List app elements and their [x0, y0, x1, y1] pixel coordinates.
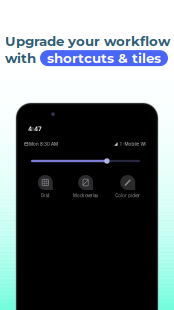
button[interactable]: shortcuts & tiles [40, 50, 168, 66]
staticText: shortcuts & tiles [47, 50, 161, 66]
staticText: with [5, 50, 36, 66]
staticText: T-Mobile Wi [118, 141, 146, 147]
button[interactable]: Color picker [108, 175, 148, 198]
button[interactable]: Mock overlay [66, 175, 106, 198]
staticText: Color picker [115, 193, 140, 198]
button[interactable]: Grid [25, 175, 65, 198]
staticText: Upgrade your workflow [5, 33, 170, 49]
staticText: 4:47 [28, 125, 42, 133]
staticText: Mock overlay [73, 193, 98, 198]
staticText: Grid [41, 193, 50, 198]
staticText: Mon 8:30 AM [28, 141, 58, 147]
